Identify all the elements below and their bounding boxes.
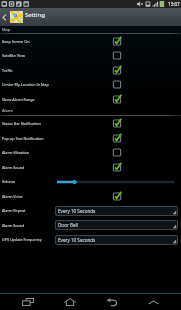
staticText: Alarm Repeat (2, 208, 26, 213)
staticText: Every 10 Seconds (58, 208, 96, 214)
staticText: Traffic (2, 68, 13, 73)
button[interactable]: Home (57, 294, 83, 310)
button[interactable]: Alarm Vibration (0, 145, 181, 160)
staticText: Keep Screen On (2, 39, 30, 44)
button[interactable]: Alarm Voice (0, 189, 181, 203)
button[interactable]: Alarm Repeat (0, 203, 181, 218)
staticText: Pop-up Text Notification (2, 136, 44, 141)
button[interactable]: Center My Location In Map (0, 77, 181, 92)
staticText: Door Bell (58, 222, 78, 228)
staticText: Show Alarm Range (2, 97, 35, 102)
button[interactable]: Pop-up Text Notification (0, 131, 181, 145)
button[interactable]: Recent apps (15, 294, 41, 310)
button[interactable]: Satellite View (0, 48, 181, 63)
button[interactable]: Volume (0, 174, 181, 189)
button[interactable]: Show Alarm Range (0, 92, 181, 106)
staticText: Alarm (2, 108, 13, 113)
button[interactable]: Navigate up (0, 8, 9, 26)
staticText: Setting (25, 11, 45, 19)
staticText: Satellite View (2, 53, 25, 58)
staticText: Alarm Voice (2, 194, 23, 199)
staticText: Alarm Sound (2, 223, 25, 228)
staticText: Center My Location In Map (2, 82, 49, 87)
button[interactable]: Alarm Sound (0, 218, 181, 232)
button[interactable]: GPS Update Frequency (0, 232, 181, 247)
staticText: Alarm Sound (2, 165, 25, 170)
button[interactable]: Traffic (0, 63, 181, 77)
staticText: 15:07 (168, 1, 180, 7)
button[interactable]: Keep Screen On (0, 34, 181, 48)
button[interactable]: Menu (140, 294, 166, 310)
button[interactable]: Status Bar Notification (0, 116, 181, 131)
staticText: GPS Update Frequency (2, 237, 42, 242)
staticText: Alarm Vibration (2, 150, 30, 155)
staticText: Every 10 Seconds (58, 237, 96, 243)
staticText: Status Bar Notification (2, 121, 41, 126)
button[interactable]: Alarm Sound (0, 160, 181, 174)
button[interactable]: Back (98, 294, 124, 310)
staticText: Volume (2, 179, 16, 184)
staticText: Map (2, 27, 11, 32)
